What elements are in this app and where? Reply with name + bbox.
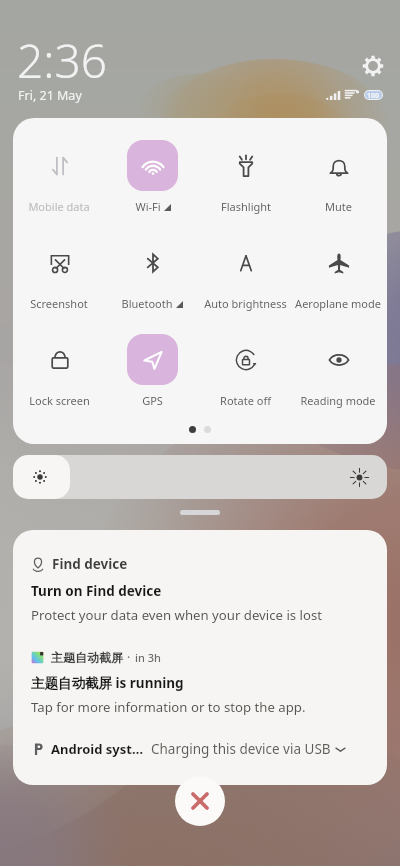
staticText: Reading mode [300,393,376,408]
staticText: Mute [325,199,352,214]
staticText: Charging this device via USB [151,740,331,758]
staticText: Auto brightness [204,296,287,311]
staticText: Screenshot [30,296,88,311]
button[interactable]: Rotate off [220,334,271,408]
button[interactable]: Auto brightness [204,237,287,311]
button[interactable]: Aeroplane mode [295,237,381,311]
staticText: Android syst… [51,740,144,758]
button[interactable]: Close [175,776,225,826]
staticText: Bluetooth [121,296,173,311]
staticText: in 3h [135,650,161,665]
button[interactable]: Brightness [13,455,387,499]
button[interactable]: GPS [127,334,178,408]
button[interactable]: Flashlight [220,140,271,214]
staticText: 100 [367,91,380,99]
button[interactable]: Settings [361,54,385,78]
staticText: Turn on Find device [31,582,162,600]
staticText: Find device [52,555,128,573]
button[interactable]: Mobile data [28,140,90,214]
button[interactable]: Mute [313,140,364,214]
button[interactable]: Screenshot [30,237,88,311]
button[interactable]: Android syst… [13,740,387,758]
staticText: Flashlight [221,199,271,214]
button[interactable]: Wi-Fi [127,140,178,214]
staticText: Protect your data even when your device … [31,606,323,624]
staticText: Wi-Fi [135,199,161,214]
staticText: · [127,649,131,665]
button[interactable]: Bluetooth [121,237,183,311]
button[interactable]: Find device [13,530,387,624]
staticText: 主题自动截屏 [51,650,123,665]
button[interactable]: Lock screen [29,334,90,408]
staticText: 主题自动截屏 is running [31,674,184,692]
staticText: GPS [142,393,163,408]
button[interactable]: Reading mode [300,334,376,408]
staticText: Mobile data [28,199,90,214]
staticText: Aeroplane mode [295,296,381,311]
staticText: Fri, 21 May [18,87,82,104]
staticText: Tap for more information or to stop the … [31,698,306,716]
button[interactable]: 主题自动截屏 [13,649,387,716]
staticText: Lock screen [29,393,90,408]
staticText: 2:36 [17,29,108,92]
staticText: Rotate off [220,393,271,408]
